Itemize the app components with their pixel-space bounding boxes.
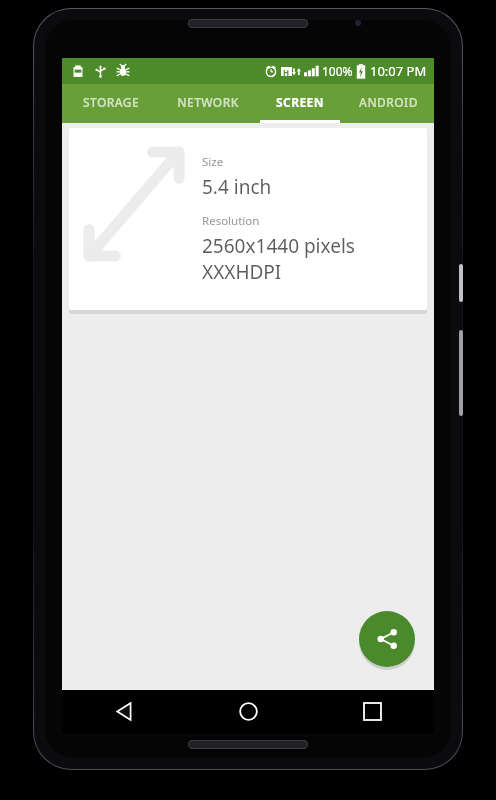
staticText: STORAGE bbox=[83, 94, 139, 110]
staticText: SCREEN bbox=[276, 94, 324, 110]
button[interactable]: NETWORK bbox=[159, 84, 257, 123]
button[interactable]: SCREEN bbox=[257, 84, 343, 123]
button[interactable]: ANDROID bbox=[343, 84, 434, 123]
staticText: XXXHDPI bbox=[202, 259, 282, 285]
button[interactable]: Size bbox=[69, 128, 427, 310]
staticText: Size bbox=[202, 154, 224, 170]
staticText: 100% bbox=[322, 63, 353, 79]
staticText: Resolution bbox=[202, 213, 260, 229]
staticText: 5.4 inch bbox=[202, 174, 272, 200]
staticText: H bbox=[283, 67, 290, 76]
staticText: 10:07 PM bbox=[370, 62, 427, 80]
button[interactable]: Share bbox=[359, 611, 415, 667]
button[interactable]: STORAGE bbox=[62, 84, 159, 123]
button[interactable]: Recent apps bbox=[310, 690, 434, 733]
staticText: ANDROID bbox=[359, 94, 418, 110]
staticText: 2560x1440 pixels bbox=[202, 233, 355, 259]
staticText: NETWORK bbox=[177, 94, 239, 110]
button[interactable]: Home bbox=[186, 690, 310, 733]
button[interactable]: Back bbox=[62, 690, 186, 733]
